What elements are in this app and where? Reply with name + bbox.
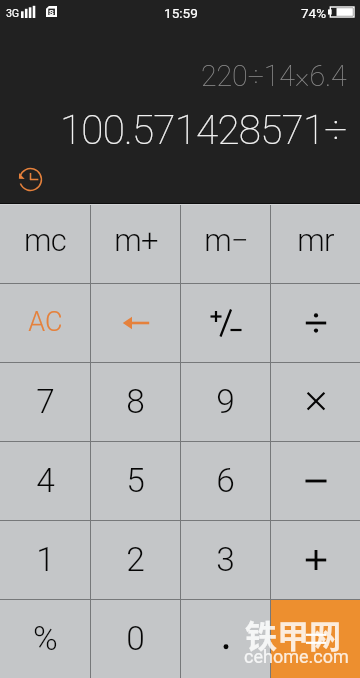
staticText: 0 bbox=[126, 619, 145, 658]
button[interactable]: Divide bbox=[271, 284, 360, 362]
staticText: 3 bbox=[216, 540, 235, 579]
staticText: 100.571428571÷ bbox=[60, 106, 347, 153]
button[interactable]: History bbox=[18, 167, 43, 192]
other: Multiply bbox=[291, 377, 341, 427]
button[interactable]: Minus bbox=[271, 442, 360, 520]
staticText: 3G bbox=[6, 7, 20, 20]
staticText: 6 bbox=[216, 461, 235, 500]
other: Divide bbox=[291, 298, 341, 348]
other: Backspace bbox=[111, 298, 161, 348]
staticText: cehome.com bbox=[244, 646, 349, 667]
other: Decimal point bbox=[201, 614, 251, 664]
staticText: 8 bbox=[126, 382, 145, 421]
button[interactable]: 3 bbox=[181, 521, 270, 599]
other: Plus minus bbox=[201, 298, 251, 348]
button[interactable]: Equals bbox=[271, 600, 360, 678]
staticText: 220÷14×6.4 bbox=[201, 59, 347, 93]
staticText: 2 bbox=[126, 540, 145, 579]
staticText: 9 bbox=[216, 382, 235, 421]
staticText: 铁甲网 bbox=[245, 611, 342, 657]
staticText: 4 bbox=[36, 461, 55, 500]
button[interactable]: 5 bbox=[91, 442, 180, 520]
button[interactable]: 0 bbox=[91, 600, 180, 678]
button[interactable]: Plus bbox=[271, 521, 360, 599]
button[interactable]: 1 bbox=[0, 521, 90, 599]
staticText: m+ bbox=[114, 222, 158, 258]
button[interactable]: mr bbox=[271, 205, 360, 283]
button[interactable]: AC bbox=[0, 284, 90, 362]
staticText: 1 bbox=[36, 540, 55, 579]
button[interactable]: 7 bbox=[0, 363, 90, 441]
staticText: 15:59 bbox=[164, 5, 198, 21]
staticText: S bbox=[49, 8, 54, 17]
button[interactable]: 9 bbox=[181, 363, 270, 441]
staticText: 7 bbox=[36, 382, 55, 421]
staticText: m− bbox=[204, 222, 248, 258]
button[interactable]: % bbox=[0, 600, 90, 678]
button[interactable]: Decimal point bbox=[181, 600, 270, 678]
button[interactable]: 6 bbox=[181, 442, 270, 520]
staticText: % bbox=[33, 619, 58, 658]
button[interactable]: m− bbox=[181, 205, 270, 283]
button[interactable]: Backspace bbox=[91, 284, 180, 362]
button[interactable]: mc bbox=[0, 205, 90, 283]
staticText: mr bbox=[297, 222, 334, 258]
button[interactable]: 8 bbox=[91, 363, 180, 441]
button[interactable]: m+ bbox=[91, 205, 180, 283]
button[interactable]: Plus minus bbox=[181, 284, 270, 362]
button[interactable]: Multiply bbox=[271, 363, 360, 441]
button[interactable]: 2 bbox=[91, 521, 180, 599]
staticText: mc bbox=[24, 222, 66, 258]
other: Equals bbox=[291, 614, 341, 664]
staticText: AC bbox=[28, 306, 63, 338]
staticText: 74% bbox=[301, 5, 327, 21]
staticText: 5 bbox=[126, 461, 145, 500]
other: Minus bbox=[291, 456, 341, 506]
other: Plus bbox=[291, 535, 341, 585]
button[interactable]: 4 bbox=[0, 442, 90, 520]
